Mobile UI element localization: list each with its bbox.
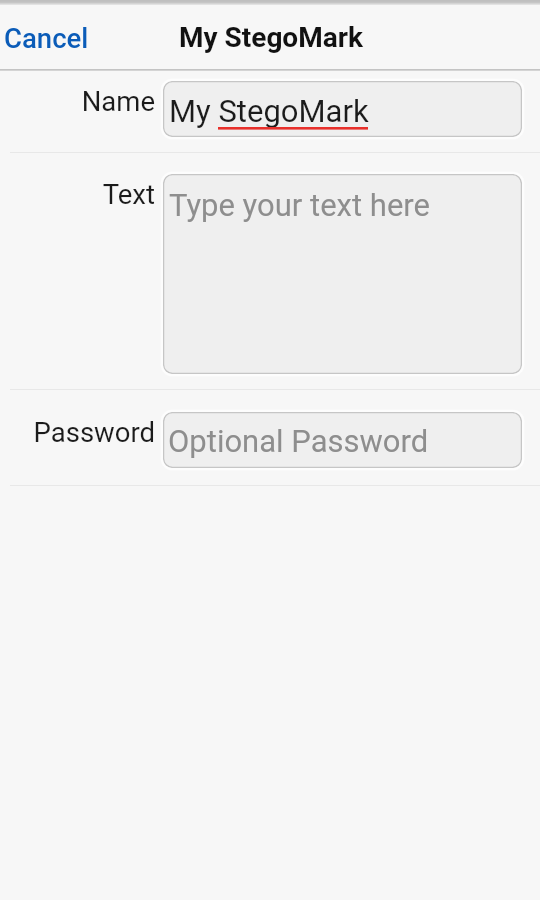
staticText: Text [0,178,155,210]
button[interactable]: Cancel [4,5,89,69]
staticText: Name [0,85,155,117]
staticText: Optional Password [168,423,429,459]
staticText: Type your text here [169,187,430,223]
button[interactable]: Text [163,174,522,374]
button[interactable]: Name [163,81,522,137]
button[interactable]: Password [163,412,522,468]
staticText: Password [0,416,155,448]
staticText: My StegoMark [179,21,363,54]
staticText: My StegoMark [169,93,369,129]
staticText: Cancel [4,22,89,54]
